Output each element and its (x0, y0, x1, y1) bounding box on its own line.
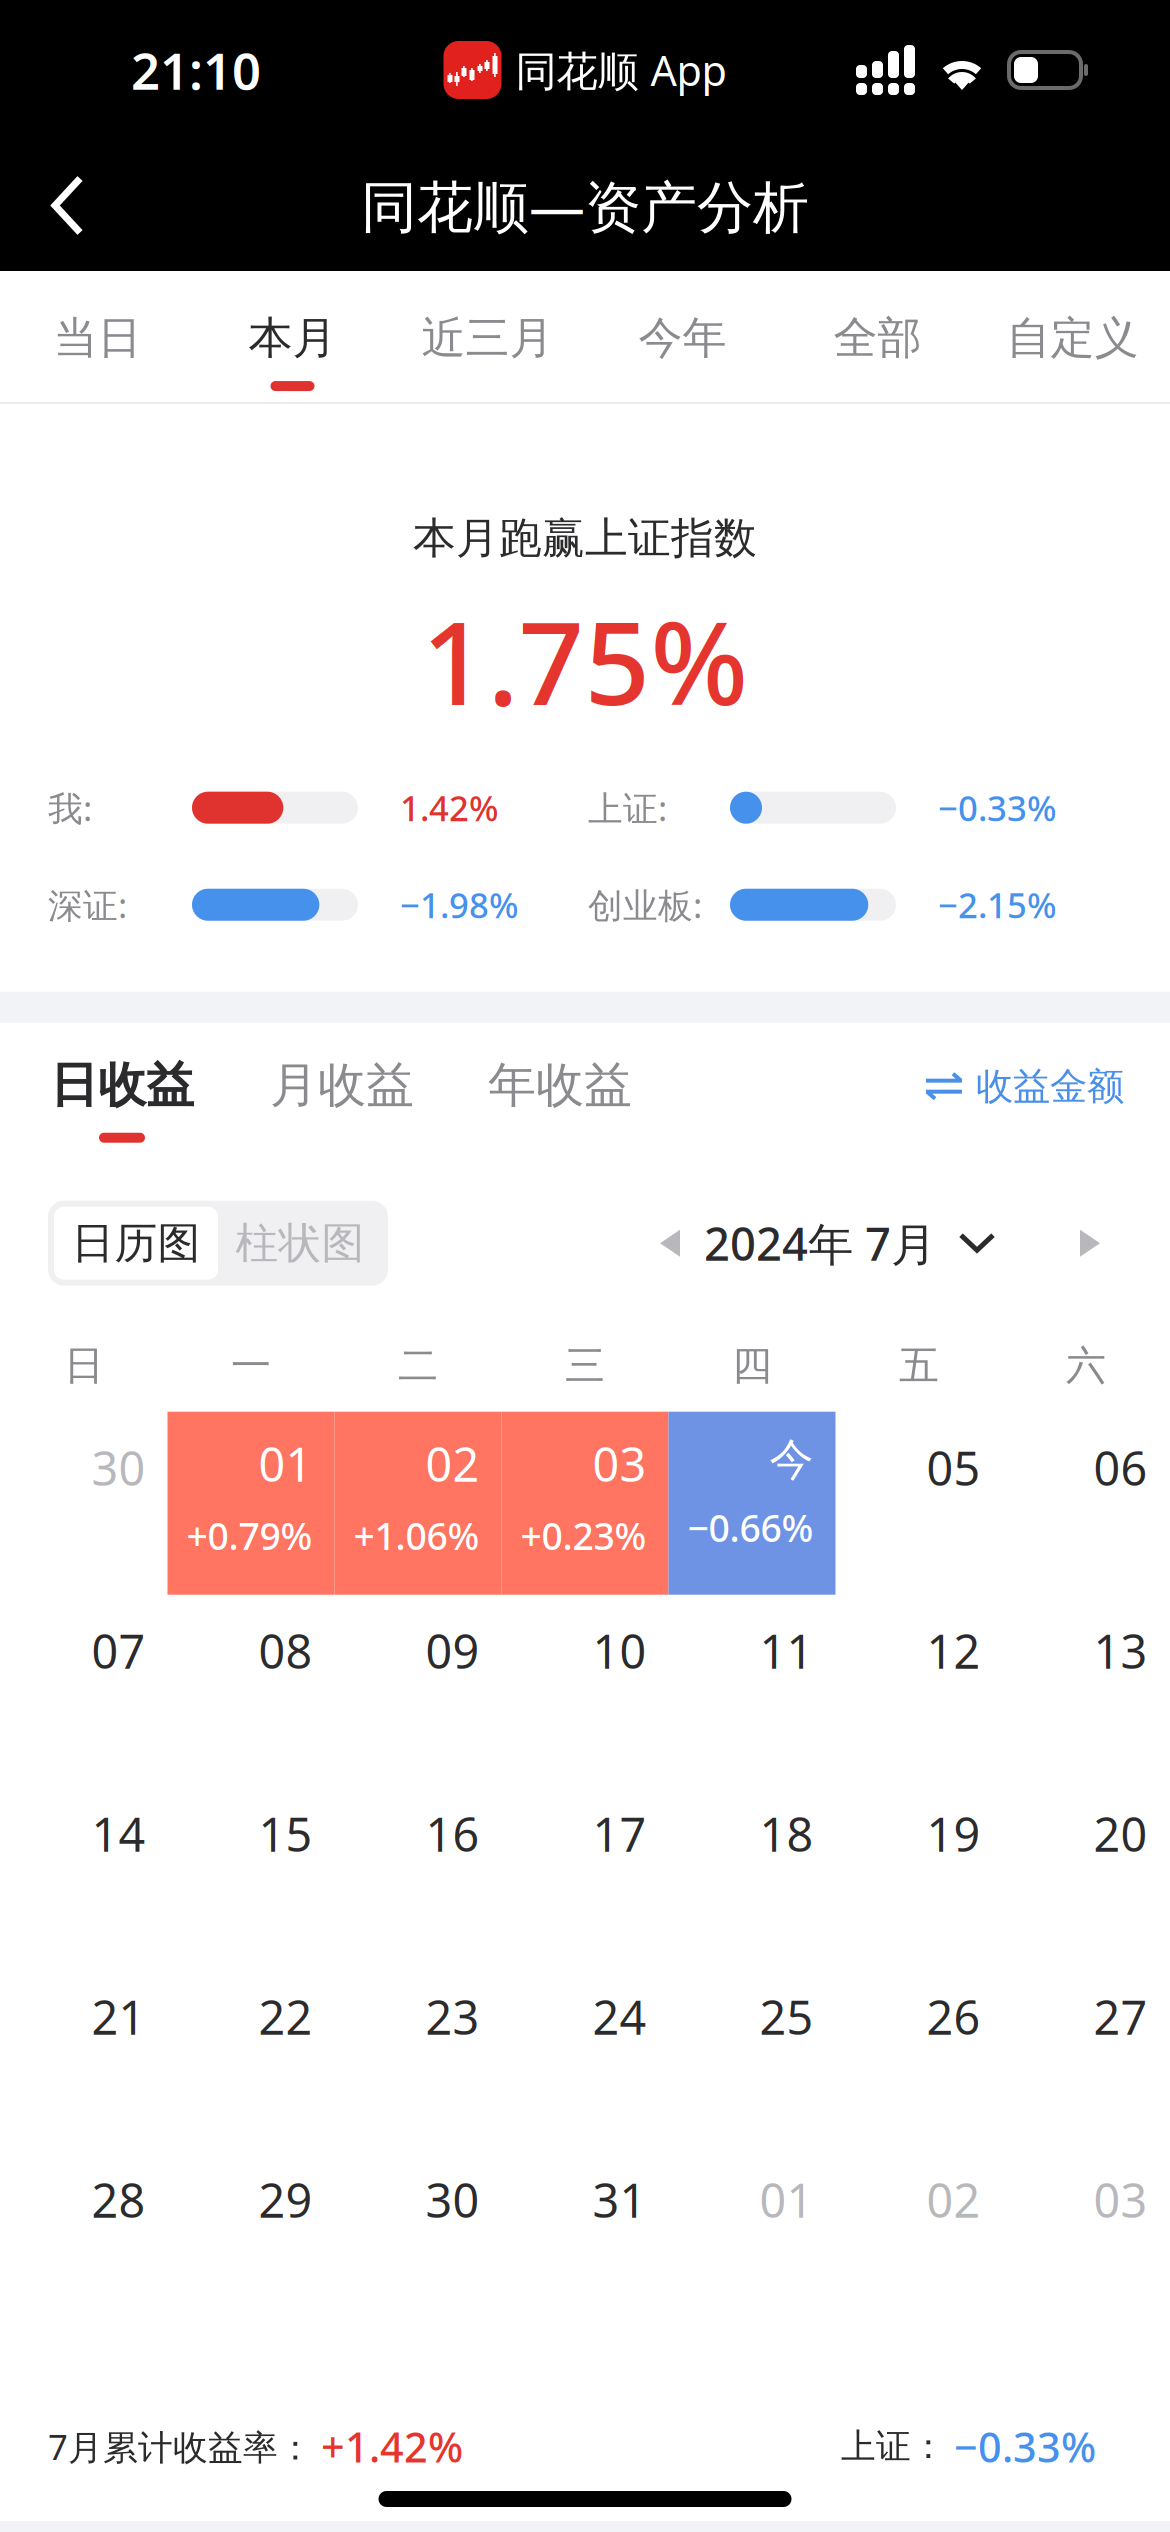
button[interactable]: 05 (835, 1412, 1002, 1595)
staticText: 27 (1093, 1986, 1147, 2048)
button[interactable]: 23 (334, 1961, 501, 2144)
staticText: 上证: (588, 785, 667, 831)
button[interactable]: 上个月 (636, 1206, 704, 1281)
staticText: −2.15% (938, 882, 1057, 928)
staticText: −1.98% (400, 882, 519, 928)
staticText: 同花顺 App (515, 43, 726, 97)
button[interactable]: 03 (1002, 2144, 1169, 2327)
button[interactable]: 02 (334, 1412, 501, 1595)
staticText: 7月累计收益率： (48, 2423, 313, 2469)
button[interactable]: 月收益 (268, 1056, 416, 1143)
button[interactable]: 16 (334, 1778, 501, 1961)
staticText: +1.42% (321, 2419, 463, 2474)
button[interactable]: 11 (668, 1595, 835, 1778)
staticText: +0.79% (186, 1511, 312, 1560)
staticText: 30 (91, 1437, 145, 1499)
button[interactable]: 10 (501, 1595, 668, 1778)
button[interactable]: 01 (167, 1412, 334, 1595)
staticText: 10 (592, 1620, 646, 1682)
button[interactable]: 07 (0, 1595, 167, 1778)
button[interactable]: 当日 (0, 271, 195, 402)
staticText: −0.33% (938, 785, 1057, 831)
button[interactable]: 25 (668, 1961, 835, 2144)
button[interactable]: 06 (1002, 1412, 1169, 1595)
staticText: 上证： (841, 2425, 946, 2468)
staticText: 07 (91, 1620, 145, 1682)
staticText: 06 (1093, 1437, 1147, 1499)
button[interactable]: 27 (1002, 1961, 1169, 2144)
staticText: 近三月 (421, 311, 553, 365)
button[interactable]: 14 (0, 1778, 167, 1961)
staticText: 创业板: (588, 882, 702, 928)
staticText: 29 (258, 2169, 312, 2231)
button[interactable]: 18 (668, 1778, 835, 1961)
button[interactable]: 全部 (780, 271, 975, 402)
staticText: 日 (64, 1341, 104, 1390)
staticText: 16 (425, 1803, 479, 1865)
button[interactable]: 近三月 (390, 271, 585, 402)
button[interactable]: 今 (668, 1412, 835, 1595)
button[interactable]: 08 (167, 1595, 334, 1778)
button[interactable]: 自定义 (975, 271, 1170, 402)
staticText: 15 (258, 1803, 312, 1865)
staticText: 收益金额 (976, 1064, 1124, 1110)
staticText: 26 (926, 1986, 980, 2048)
button[interactable]: 01 (668, 2144, 835, 2327)
staticText: 24 (592, 1986, 646, 2048)
button[interactable]: 29 (167, 2144, 334, 2327)
button[interactable]: 30 (334, 2144, 501, 2327)
staticText: 本月 (248, 311, 336, 365)
staticText: 全部 (833, 311, 921, 365)
button[interactable]: 17 (501, 1778, 668, 1961)
button[interactable]: 本月 (195, 271, 390, 402)
staticText: 本月跑赢上证指数 (413, 512, 757, 564)
staticText: 02 (425, 1433, 479, 1495)
staticText: −0.33% (954, 2419, 1096, 2474)
staticText: 我: (48, 785, 92, 831)
staticText: 30 (425, 2169, 479, 2231)
staticText: 11 (759, 1620, 813, 1682)
staticText: 自定义 (1006, 311, 1138, 365)
button[interactable]: 02 (835, 2144, 1002, 2327)
button[interactable]: 21 (0, 1961, 167, 2144)
button[interactable]: 返回 (0, 140, 117, 271)
staticText: 柱状图 (235, 1217, 364, 1269)
staticText: 同花顺—资产分析 (361, 168, 809, 243)
staticText: 02 (926, 2169, 980, 2231)
staticText: 月收益 (270, 1056, 414, 1115)
staticText: +1.06% (353, 1511, 479, 1560)
button[interactable]: 收益金额 (926, 1056, 1124, 1110)
button[interactable]: 28 (0, 2144, 167, 2327)
staticText: 01 (258, 1433, 312, 1495)
button[interactable]: 22 (167, 1961, 334, 2144)
button[interactable]: 2024年 7月 (704, 1213, 994, 1273)
staticText: 今 (769, 1433, 813, 1487)
button[interactable]: 19 (835, 1778, 1002, 1961)
staticText: +0.23% (520, 1511, 646, 1560)
button[interactable]: 31 (501, 2144, 668, 2327)
staticText: 一 (231, 1341, 271, 1390)
staticText: 13 (1093, 1620, 1147, 1682)
staticText: 03 (1093, 2169, 1147, 2231)
staticText: 二 (398, 1341, 438, 1390)
button[interactable]: 03 (501, 1412, 668, 1595)
button[interactable]: 20 (1002, 1778, 1169, 1961)
button[interactable]: 30 (0, 1412, 167, 1595)
button[interactable]: 年收益 (486, 1056, 634, 1143)
button[interactable]: 26 (835, 1961, 1002, 2144)
staticText: 03 (592, 1433, 646, 1495)
button[interactable]: 12 (835, 1595, 1002, 1778)
staticText: −0.66% (687, 1503, 813, 1552)
staticText: 22 (258, 1986, 312, 2048)
button[interactable]: 09 (334, 1595, 501, 1778)
button[interactable]: 今年 (585, 271, 780, 402)
button[interactable]: 15 (167, 1778, 334, 1961)
button[interactable]: 日历图 (54, 1207, 218, 1280)
staticText: 05 (926, 1437, 980, 1499)
staticText: 08 (258, 1620, 312, 1682)
button[interactable]: 13 (1002, 1595, 1169, 1778)
button[interactable]: 日收益 (48, 1056, 196, 1143)
button[interactable]: 下个月 (1056, 1206, 1124, 1281)
button[interactable]: 24 (501, 1961, 668, 2144)
button[interactable]: 柱状图 (218, 1207, 382, 1280)
